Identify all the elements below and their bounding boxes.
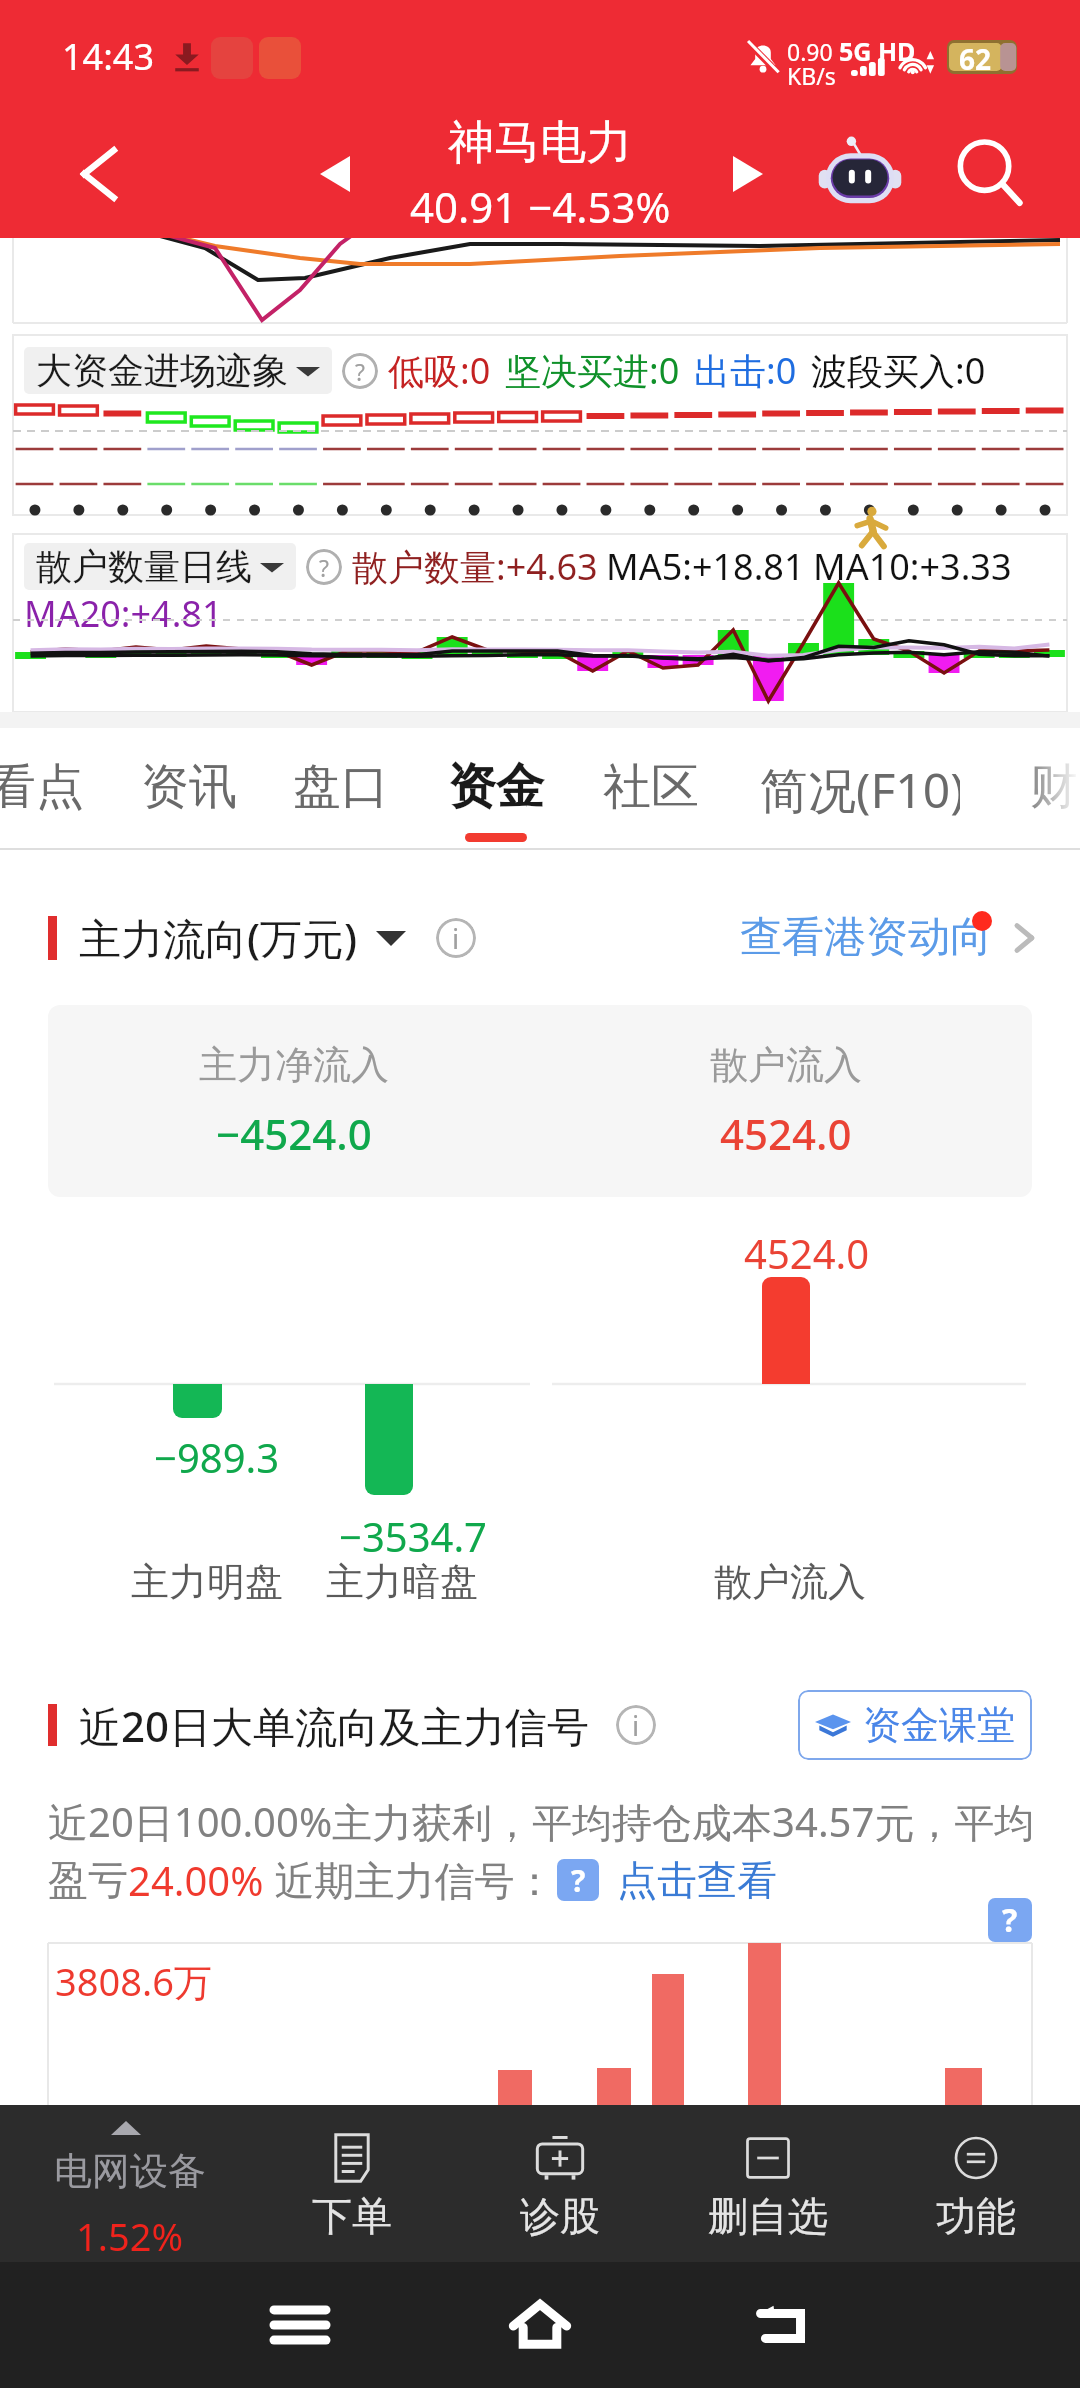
staticText: i — [632, 1706, 640, 1744]
staticText: 波段买入:0 — [811, 346, 986, 395]
staticText: 14:43 — [62, 32, 155, 81]
button[interactable]: 电网设备 — [0, 2105, 248, 2262]
staticText: 主力明盘 — [131, 1558, 283, 1606]
staticText: 资金 — [448, 757, 544, 817]
staticText: 坚决买进:0 — [505, 346, 680, 395]
button[interactable]: Previous stock — [290, 110, 380, 238]
staticText: 主力暗盘 — [326, 1558, 478, 1606]
staticText: MA20:+4.81 — [24, 589, 223, 638]
button[interactable]: 财务 — [1028, 728, 1080, 850]
staticText: 散户数量日线 — [36, 544, 252, 589]
staticText: 0.90 — [787, 36, 833, 67]
button[interactable]: Help — [342, 353, 378, 389]
staticText: 资讯 — [141, 757, 237, 817]
staticText: 近20日100.00%主力获利，平均持仓成本34.57元，平均 — [48, 1794, 1035, 1849]
staticText: 电网设备 — [54, 2147, 206, 2195]
button[interactable]: 看点 — [0, 728, 86, 850]
staticText: −3534.7 — [339, 1509, 487, 1563]
staticText: 40.91 −4.53% — [410, 178, 671, 235]
button[interactable]: Search — [930, 110, 1050, 238]
staticText: 下单 — [312, 2191, 392, 2241]
button[interactable]: Help — [306, 549, 342, 585]
staticText: 24.00% — [128, 1853, 264, 1907]
staticText: 5G HD — [839, 34, 916, 68]
button[interactable]: Home — [500, 2285, 580, 2365]
staticText: 散户数量:+4.63 — [352, 542, 598, 591]
staticText: 62 — [959, 40, 992, 74]
button[interactable]: Help — [988, 1898, 1032, 1942]
staticText: 近期主力信号： — [264, 1852, 555, 1907]
staticText: 资金课堂 — [863, 1701, 1015, 1749]
staticText: 出击:0 — [694, 346, 797, 395]
button[interactable]: 社区 — [602, 728, 700, 850]
staticText: 查看港资动向 — [740, 911, 992, 964]
staticText: 主力净流入 — [199, 1041, 389, 1089]
staticText: 低吸:0 — [388, 346, 491, 395]
staticText: ? — [1002, 1898, 1018, 1942]
button[interactable]: 资讯 — [140, 728, 238, 850]
staticText: 主力流向(万元) — [79, 909, 358, 966]
staticText: i — [452, 919, 460, 957]
staticText: 简况(F10) — [760, 757, 960, 823]
button[interactable]: Next stock — [703, 110, 793, 238]
staticText: KB/s — [787, 60, 836, 91]
staticText: 近20日大单流向及主力信号 — [79, 1697, 590, 1754]
button[interactable]: 盘口 — [292, 728, 390, 850]
staticText: 诊股 — [520, 2191, 600, 2241]
staticText: 财务 — [1030, 757, 1080, 817]
staticText: −989.3 — [154, 1430, 280, 1484]
button[interactable]: 资金课堂 — [815, 1701, 1015, 1749]
staticText: 社区 — [603, 757, 699, 817]
staticText: 点击查看 — [617, 1855, 777, 1905]
button[interactable]: 散户数量日线 — [36, 544, 284, 589]
button[interactable]: Info — [436, 918, 476, 958]
staticText: 看点 — [0, 757, 84, 817]
button[interactable]: AI assistant — [796, 110, 924, 238]
button[interactable]: ? — [557, 1859, 599, 1901]
button[interactable]: 诊股 — [456, 2105, 664, 2262]
staticText: 神马电力 — [448, 114, 632, 172]
staticText: 4524.0 — [720, 1105, 852, 1162]
button[interactable]: Back — [740, 2285, 820, 2365]
button[interactable]: 资金 — [446, 728, 546, 850]
staticText: 3808.6万 — [55, 1955, 212, 2007]
staticText: 盘口 — [293, 757, 389, 817]
button[interactable]: 下单 — [248, 2105, 456, 2262]
button[interactable]: 功能 — [872, 2105, 1080, 2262]
staticText: 散户流入 — [714, 1558, 866, 1606]
staticText: MA5:+18.81 — [606, 542, 805, 591]
button[interactable]: 删自选 — [664, 2105, 872, 2262]
staticText: 大资金进场迹象 — [36, 348, 288, 393]
staticText: ? — [571, 1860, 586, 1901]
staticText: 散户流入 — [710, 1041, 862, 1089]
staticText: 盈亏 — [48, 1855, 128, 1905]
button[interactable]: 简况(F10) — [760, 728, 960, 850]
staticText: −4524.0 — [216, 1105, 372, 1162]
button[interactable]: Back — [38, 110, 158, 238]
button[interactable]: 查看港资动向 — [740, 911, 1038, 964]
button[interactable]: Info — [616, 1705, 656, 1745]
button[interactable]: Recents — [260, 2285, 340, 2365]
staticText: 1.52% — [76, 2210, 183, 2262]
button[interactable]: Change metric — [376, 928, 406, 948]
button[interactable]: 大资金进场迹象 — [36, 348, 320, 393]
staticText: ? — [319, 552, 329, 583]
staticText: ? — [355, 356, 365, 387]
staticText: MA10:+3.33 — [813, 542, 1012, 591]
staticText: 4524.0 — [744, 1226, 870, 1280]
staticText: 功能 — [936, 2191, 1016, 2241]
staticText: 删自选 — [708, 2191, 828, 2241]
